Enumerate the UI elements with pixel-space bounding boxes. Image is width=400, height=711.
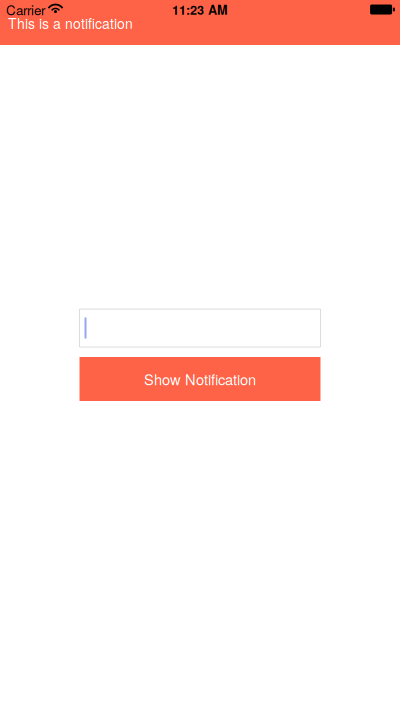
staticText: Show Notification [144,368,256,389]
button[interactable]: Notification text field [79,309,320,347]
staticText: 11:23 AM [172,0,228,18]
staticText: This is a notification [8,13,133,33]
button[interactable]: Show Notification [79,357,320,401]
staticText: Carrier [6,0,45,19]
